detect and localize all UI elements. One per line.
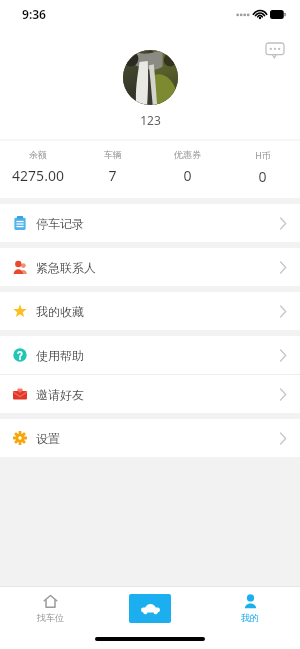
button[interactable]: Messages bbox=[262, 37, 288, 63]
button[interactable]: 邀请好友 bbox=[0, 375, 300, 413]
button[interactable]: 我的收藏 bbox=[0, 292, 300, 330]
staticText: 4275.00 bbox=[12, 166, 64, 185]
staticText: 9:36 bbox=[22, 6, 46, 22]
button[interactable]: 优惠券 bbox=[150, 149, 225, 185]
staticText: 0 bbox=[183, 166, 192, 185]
staticText: 找车位 bbox=[37, 612, 64, 623]
staticText: 车辆 bbox=[104, 149, 122, 160]
button[interactable]: 使用帮助 bbox=[0, 336, 300, 374]
button[interactable]: 找车位 bbox=[0, 587, 100, 629]
button[interactable]: H币 bbox=[225, 149, 300, 186]
button[interactable]: 余额 bbox=[0, 149, 75, 185]
staticText: 我的收藏 bbox=[36, 304, 84, 319]
staticText: 0 bbox=[258, 167, 267, 186]
button[interactable]: 车辆 bbox=[75, 149, 150, 185]
staticText: 停车记录 bbox=[36, 216, 84, 231]
staticText: 123 bbox=[140, 112, 161, 128]
staticText: 余额 bbox=[29, 149, 47, 160]
staticText: 优惠券 bbox=[174, 149, 201, 160]
button[interactable]: 我的 bbox=[200, 587, 300, 629]
staticText: 邀请好友 bbox=[36, 387, 84, 402]
staticText: 7 bbox=[108, 166, 117, 185]
button[interactable]: Profile photo bbox=[123, 50, 178, 105]
staticText: 使用帮助 bbox=[36, 348, 84, 363]
button[interactable]: 停车记录 bbox=[0, 204, 300, 242]
button[interactable]: 紧急联系人 bbox=[0, 248, 300, 286]
staticText: 我的 bbox=[241, 612, 259, 623]
staticText: 紧急联系人 bbox=[36, 260, 96, 275]
button[interactable]: 设置 bbox=[0, 419, 300, 457]
button[interactable]: My car bbox=[129, 594, 171, 623]
staticText: 设置 bbox=[36, 431, 60, 446]
staticText: H币 bbox=[255, 149, 271, 161]
